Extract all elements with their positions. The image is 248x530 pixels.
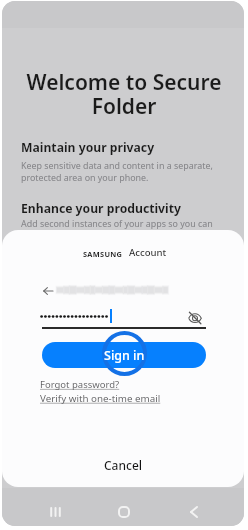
- staticText: Add second instances of your apps so you…: [21, 217, 213, 229]
- button[interactable]: Recent apps: [33, 493, 77, 526]
- staticText: Cancel: [104, 457, 143, 473]
- button[interactable]: Back: [172, 493, 216, 526]
- button[interactable]: Cancel: [2, 452, 244, 478]
- button[interactable]: [42, 342, 206, 368]
- button[interactable]: Back: [40, 283, 56, 299]
- staticText: Welcome to Secure Folder: [3, 68, 244, 121]
- staticText: Enhance your productivity: [21, 200, 181, 217]
- staticText: Sign in: [104, 347, 145, 364]
- staticText: Maintain your privacy: [21, 139, 155, 156]
- staticText: SAMSUNG: [83, 249, 123, 259]
- button[interactable]: Show password: [185, 308, 204, 327]
- button[interactable]: Forgot password?: [40, 378, 120, 391]
- button[interactable]: Verify with one-time email: [40, 392, 161, 405]
- staticText: Keep sensitive data and content in a sep…: [21, 159, 213, 183]
- button[interactable]: Home: [102, 493, 146, 526]
- staticText: Account: [129, 246, 167, 259]
